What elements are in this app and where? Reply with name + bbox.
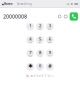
button[interactable]: 7 — [26, 47, 35, 60]
staticText: WXYZ — [48, 55, 52, 57]
staticText: GHI — [29, 42, 31, 43]
button[interactable]: 4 — [26, 33, 35, 46]
button[interactable]: Add contact — [63, 12, 69, 20]
staticText: 2 — [39, 23, 41, 28]
staticText: ◂ — [1, 2, 3, 6]
button[interactable]: # — [45, 60, 54, 73]
staticText: # — [48, 62, 51, 69]
staticText: 9 — [49, 50, 51, 55]
staticText: 8 — [39, 50, 41, 55]
button[interactable]: 1 — [26, 20, 35, 33]
staticText: 4 — [29, 36, 31, 42]
staticText: DEF — [48, 28, 51, 30]
button[interactable]: 0 — [35, 60, 44, 73]
button[interactable]: 2 — [35, 20, 44, 33]
button[interactable]: Video call — [57, 12, 63, 20]
button[interactable]: 3 — [45, 20, 54, 33]
staticText: ABC — [38, 28, 41, 30]
staticText: 1 — [29, 23, 31, 28]
staticText: 20000008 — [3, 13, 27, 20]
staticText: 3 — [49, 23, 51, 28]
button[interactable]: ◂ — [0, 2, 13, 6]
button[interactable]: 8 — [35, 47, 44, 60]
staticText: ✱ — [28, 63, 32, 69]
button[interactable]: ✱ — [26, 60, 35, 73]
button[interactable]: 5 — [35, 33, 44, 46]
staticText: TUV — [38, 55, 41, 57]
staticText: Home — [4, 2, 13, 6]
staticText: 7 — [29, 50, 31, 55]
staticText: 6 — [49, 36, 51, 42]
button[interactable]: 9 — [45, 47, 54, 60]
staticText: PQRS — [28, 55, 32, 57]
staticText: Tap and hold 0 for + — [25, 74, 54, 78]
button[interactable]: Call — [69, 12, 80, 21]
staticText: 0 — [39, 63, 41, 68]
button[interactable]: 6 — [45, 33, 54, 46]
staticText: Something — [17, 2, 32, 6]
staticText: JKL — [39, 42, 41, 43]
staticText: 5 — [39, 36, 41, 42]
staticText: MNO — [48, 42, 51, 43]
